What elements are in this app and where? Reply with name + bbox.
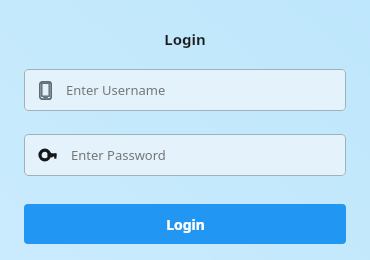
button[interactable]: Password xyxy=(24,134,346,176)
other: Password xyxy=(39,149,57,161)
staticText: Enter Username xyxy=(66,81,166,99)
staticText: Enter Password xyxy=(71,146,166,164)
staticText: Login xyxy=(164,29,206,49)
button[interactable]: Login xyxy=(24,204,346,244)
other: Username xyxy=(39,81,52,100)
staticText: Login xyxy=(166,215,205,234)
button[interactable]: Username xyxy=(24,69,346,111)
